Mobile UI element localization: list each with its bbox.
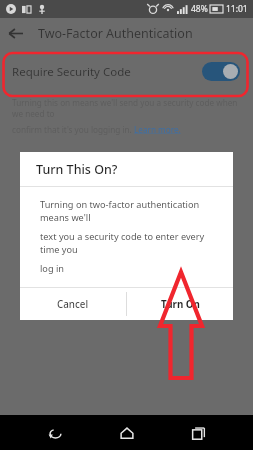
staticText: Turning on two-factor authentication mea… <box>40 198 221 224</box>
button[interactable]: Back <box>38 416 72 450</box>
staticText: text you a security code to enter every … <box>40 230 221 256</box>
other: Require Security Code toggle <box>202 62 240 81</box>
staticText: Learn more. <box>134 124 181 135</box>
button[interactable]: Cancel <box>20 288 126 320</box>
button[interactable]: Learn more. <box>134 124 181 135</box>
button[interactable]: Recents <box>181 416 215 450</box>
staticText: Cancel <box>57 298 89 311</box>
staticText: 11:01 <box>226 3 248 15</box>
button[interactable]: Require Security Code <box>0 48 253 95</box>
staticText: Two-Factor Authentication <box>38 25 193 42</box>
staticText: Turn This On? <box>36 161 118 178</box>
staticText: Require Security Code <box>12 64 131 80</box>
staticText: Turning this on means we'll send you a s… <box>12 97 243 119</box>
button[interactable]: Back <box>0 18 30 48</box>
staticText: 48% <box>191 3 208 15</box>
button[interactable]: Home <box>110 416 144 450</box>
staticText: log in <box>40 262 65 275</box>
staticText: confirm that it's you logging in. <box>12 124 134 135</box>
staticText: Turn On <box>161 298 200 311</box>
button[interactable]: Turn On <box>127 288 233 320</box>
